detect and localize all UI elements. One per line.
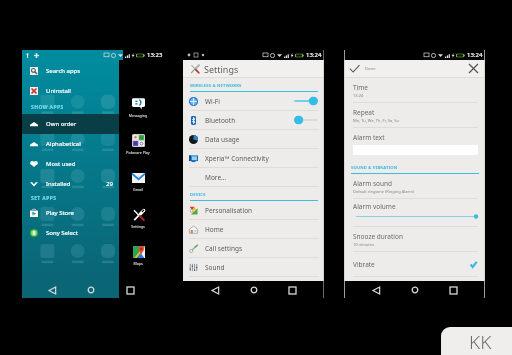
staticText: Play Store bbox=[46, 209, 74, 217]
button[interactable]: Settings bbox=[183, 60, 324, 77]
button[interactable]: More… bbox=[183, 168, 324, 186]
staticText: Maps bbox=[121, 261, 155, 266]
staticText: Wi-Fi bbox=[205, 97, 220, 106]
button[interactable]: Sony Select bbox=[22, 223, 119, 243]
button[interactable]: Alarm volume bbox=[344, 199, 485, 226]
button[interactable]: Messaging bbox=[121, 96, 155, 118]
button[interactable]: Back bbox=[369, 283, 383, 297]
staticText: 29 bbox=[106, 180, 113, 188]
button[interactable]: Uninstall bbox=[22, 81, 119, 101]
staticText: Own order bbox=[46, 120, 77, 128]
button[interactable]: Home bbox=[84, 283, 98, 297]
staticText: Home bbox=[205, 225, 224, 234]
staticText: 13:24 bbox=[467, 51, 483, 59]
staticText: Settings bbox=[204, 63, 239, 75]
staticText: Snooze duration bbox=[353, 232, 403, 241]
button[interactable]: Data usage bbox=[183, 130, 324, 148]
staticText: Alarm sound bbox=[353, 179, 393, 188]
button[interactable]: Home bbox=[408, 283, 422, 297]
staticText: Default ringtone (Ringing Alarm) bbox=[353, 189, 415, 194]
staticText: Call settings bbox=[205, 244, 243, 253]
staticText: Sound bbox=[205, 263, 225, 272]
button[interactable]: Close bbox=[467, 62, 480, 75]
staticText: KK bbox=[469, 329, 492, 355]
button[interactable]: Time bbox=[344, 78, 485, 103]
staticText: Data usage bbox=[205, 135, 240, 144]
staticText: 13:23 bbox=[147, 51, 163, 59]
staticText: Gmail bbox=[121, 187, 155, 192]
staticText: Settings bbox=[121, 224, 155, 229]
button[interactable]: Bluetooth bbox=[183, 111, 324, 129]
button[interactable]: Home bbox=[247, 283, 261, 297]
staticText: SOUND & VIBRATION bbox=[351, 165, 398, 171]
staticText: SET APPS bbox=[31, 195, 57, 202]
staticText: DEVICE bbox=[190, 192, 206, 198]
staticText: Alphabetical bbox=[46, 140, 81, 148]
button[interactable]: Personalisation bbox=[183, 201, 324, 219]
staticText: Alarm volume bbox=[353, 202, 396, 211]
staticText: Mo, Tu, We, Th, Fr, Sa, Su bbox=[353, 118, 400, 123]
button[interactable]: Maps bbox=[121, 244, 155, 266]
staticText: Personalisation bbox=[205, 206, 253, 215]
staticText: Search apps bbox=[46, 67, 81, 75]
button[interactable]: Play Store bbox=[22, 203, 119, 223]
button[interactable]: Settings bbox=[121, 207, 155, 229]
staticText: Alarm text bbox=[353, 133, 385, 142]
staticText: 10 minutes bbox=[353, 242, 374, 247]
button[interactable]: Installed bbox=[22, 174, 119, 194]
button[interactable]: Home bbox=[183, 220, 324, 238]
button[interactable]: Repeat bbox=[344, 103, 485, 128]
button[interactable]: Gmail bbox=[121, 170, 155, 192]
button[interactable]: Back bbox=[208, 283, 222, 297]
button[interactable]: Sound bbox=[183, 258, 324, 276]
staticText: SHOW APPS bbox=[31, 104, 64, 111]
button[interactable]: Alphabetical bbox=[22, 134, 119, 154]
button[interactable]: Own order bbox=[22, 114, 119, 134]
button[interactable]: Recents bbox=[285, 283, 299, 297]
staticText: More… bbox=[205, 173, 227, 182]
staticText: Xperia™ Connectivity bbox=[205, 154, 269, 163]
staticText: Most used bbox=[46, 160, 76, 168]
button[interactable]: Recents bbox=[446, 283, 460, 297]
button[interactable]: Call settings bbox=[183, 239, 324, 257]
button[interactable]: Most used bbox=[22, 154, 119, 174]
button[interactable]: Pokecare Play bbox=[121, 133, 155, 155]
staticText: Uninstall bbox=[46, 87, 71, 95]
staticText: 13:24 bbox=[306, 51, 322, 59]
staticText: Time bbox=[353, 83, 369, 92]
button[interactable]: Alarm sound bbox=[344, 174, 485, 199]
staticText: Pokecare Play bbox=[121, 150, 155, 155]
button[interactable]: Wi-Fi bbox=[183, 92, 324, 110]
staticText: 13:24 bbox=[353, 93, 364, 98]
staticText: Sony Select bbox=[46, 229, 78, 237]
staticText: Repeat bbox=[353, 108, 375, 117]
staticText: Installed bbox=[46, 180, 71, 188]
staticText: Messaging bbox=[121, 113, 155, 118]
button[interactable]: Snooze duration bbox=[344, 227, 485, 252]
button[interactable]: Vibrate bbox=[344, 252, 485, 276]
button[interactable]: Back bbox=[45, 283, 59, 297]
button[interactable]: Alarm text bbox=[344, 128, 485, 155]
button[interactable]: Search apps bbox=[22, 61, 119, 81]
staticText: Done bbox=[365, 66, 376, 72]
staticText: Vibrate bbox=[353, 260, 375, 269]
staticText: WIRELESS & NETWORKS bbox=[190, 83, 242, 89]
button[interactable]: Xperia™ Connectivity bbox=[183, 149, 324, 167]
button[interactable]: Recents bbox=[123, 283, 137, 297]
staticText: Bluetooth bbox=[205, 116, 236, 125]
button[interactable]: Done bbox=[349, 62, 376, 75]
